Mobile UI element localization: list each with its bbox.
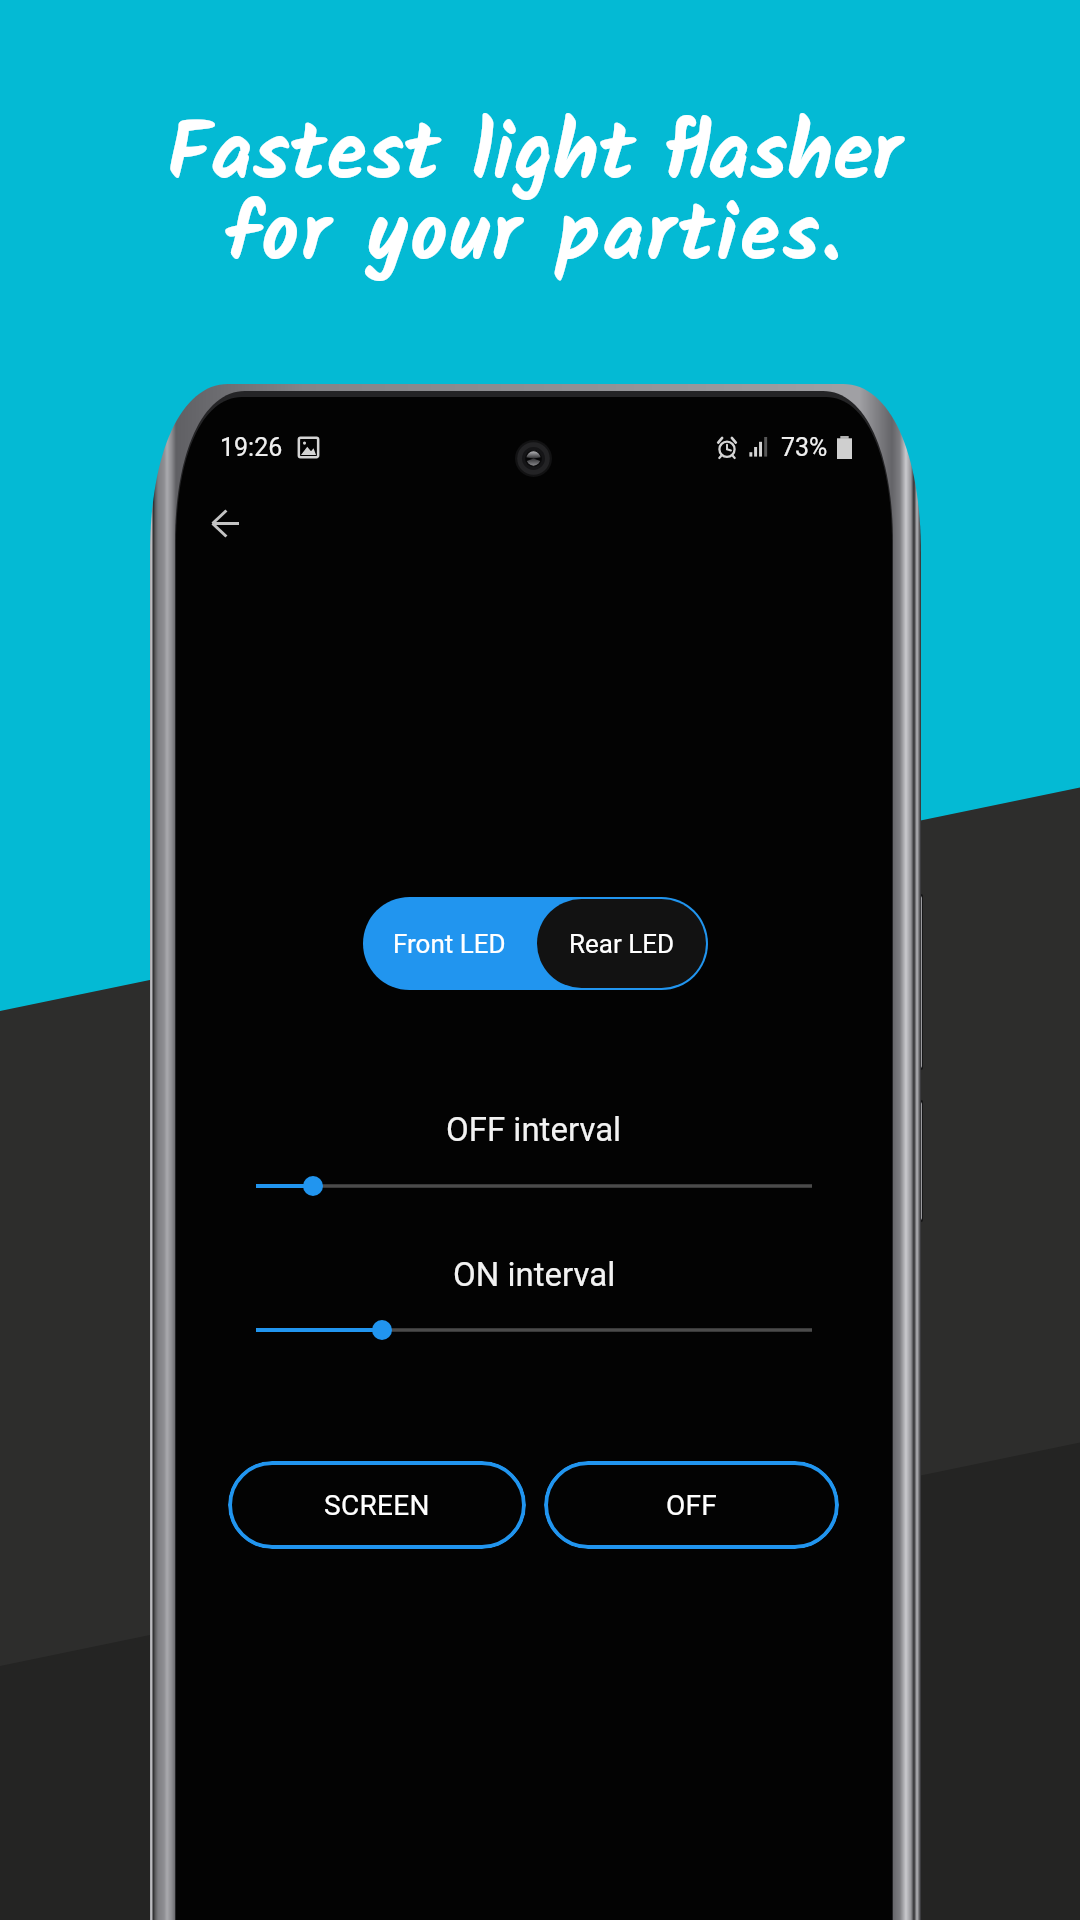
staticText: SCREEN	[324, 1489, 430, 1522]
staticText: Fastest light flasher	[167, 93, 902, 222]
staticText: 73%	[781, 433, 828, 462]
staticText: Front LED	[393, 929, 506, 959]
staticText: OFF	[666, 1489, 718, 1522]
staticText: for your parties.	[224, 174, 844, 303]
button[interactable]: Front LED	[363, 897, 535, 990]
button[interactable]: SCREEN	[228, 1461, 526, 1549]
button[interactable]: Rear LED	[537, 899, 706, 988]
staticText: OFF interval	[446, 1110, 622, 1149]
button[interactable]: Slider	[176, 1166, 892, 1206]
button[interactable]: OFF	[544, 1461, 839, 1549]
button[interactable]: Back	[189, 487, 261, 559]
staticText: Rear LED	[569, 929, 675, 959]
button[interactable]: Slider	[176, 1310, 892, 1350]
staticText: 19:26	[220, 433, 283, 462]
staticText: ON interval	[453, 1255, 616, 1294]
